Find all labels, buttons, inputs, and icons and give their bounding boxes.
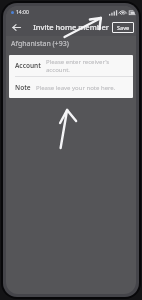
staticText: Save (117, 24, 130, 31)
staticText: Please enter receiver's account. (46, 58, 127, 74)
button[interactable]: Save (112, 22, 134, 33)
button[interactable]: Note (9, 77, 133, 98)
button[interactable]: Back (8, 19, 24, 35)
button[interactable]: Account (9, 55, 133, 76)
staticText: 14:00 (16, 9, 29, 16)
staticText: Note (15, 83, 31, 92)
staticText: Afghanistan (+93) (11, 39, 69, 49)
staticText: Account (15, 61, 41, 70)
staticText: Please leave your note here. (36, 84, 116, 92)
button[interactable]: Afghanistan (+93) (6, 36, 136, 52)
staticText: Invite home member (33, 22, 109, 32)
